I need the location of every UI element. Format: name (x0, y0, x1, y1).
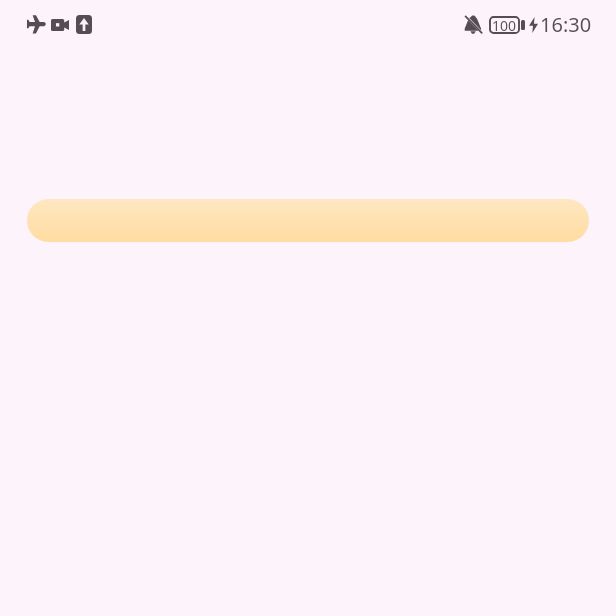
button[interactable]: Search (27, 199, 589, 242)
staticText: 16:30 (540, 11, 592, 38)
staticText: 100 (492, 16, 517, 34)
